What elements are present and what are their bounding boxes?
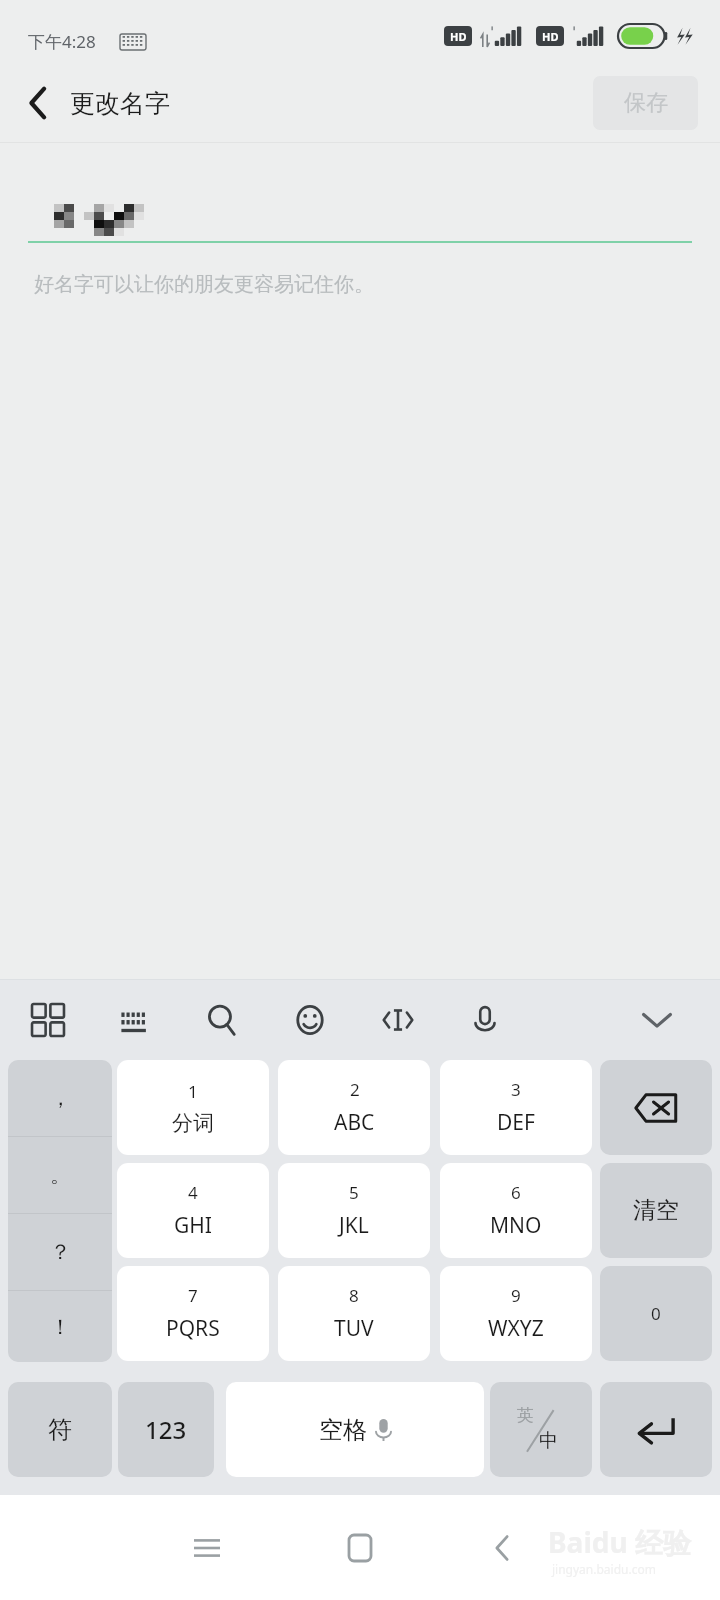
staticText: 7: [188, 1284, 198, 1307]
button[interactable]: 5: [278, 1163, 430, 1258]
button[interactable]: Voice input: [458, 993, 512, 1047]
staticText: 8: [349, 1284, 359, 1307]
button[interactable]: ！: [8, 1291, 112, 1362]
staticText: 5: [349, 1181, 359, 1204]
button[interactable]: 0: [600, 1266, 712, 1361]
staticText: 9: [511, 1284, 521, 1307]
staticText: DEF: [497, 1108, 535, 1137]
staticText: ？: [50, 1239, 71, 1265]
staticText: GHI: [174, 1211, 212, 1240]
staticText: ！: [50, 1314, 71, 1340]
staticText: JKL: [339, 1211, 369, 1240]
staticText: 保存: [624, 89, 668, 117]
button[interactable]: Move cursor: [371, 993, 425, 1047]
staticText: Baidu 经验: [548, 1523, 691, 1561]
staticText: 3: [511, 1078, 521, 1101]
button[interactable]: Hide keyboard: [630, 993, 684, 1047]
staticText: HD: [450, 29, 467, 44]
staticText: TUV: [334, 1314, 374, 1343]
staticText: 2: [350, 1078, 360, 1101]
staticText: HD: [542, 29, 559, 44]
button[interactable]: 4: [117, 1163, 269, 1258]
staticText: 分词: [172, 1110, 214, 1136]
staticText: 中: [539, 1429, 558, 1453]
staticText: WXYZ: [488, 1314, 544, 1343]
button[interactable]: ，: [8, 1060, 112, 1136]
button[interactable]: 符: [8, 1382, 112, 1477]
staticText: 清空: [633, 1196, 679, 1225]
staticText: ，: [50, 1085, 71, 1111]
staticText: jingyan.baidu.com: [552, 1561, 656, 1577]
button[interactable]: 2: [278, 1060, 430, 1155]
staticText: ABC: [334, 1108, 375, 1137]
staticText: 1: [188, 1080, 198, 1103]
button[interactable]: Backspace: [600, 1060, 712, 1155]
button[interactable]: Panels: [21, 993, 75, 1047]
button[interactable]: Back: [475, 1521, 529, 1575]
button[interactable]: 3: [440, 1060, 592, 1155]
staticText: 符: [48, 1415, 72, 1445]
button[interactable]: 清空: [600, 1163, 712, 1258]
staticText: 0: [651, 1302, 661, 1325]
button[interactable]: Enter: [600, 1382, 712, 1477]
button[interactable]: 空格: [226, 1382, 484, 1477]
staticText: 更改名字: [70, 88, 170, 119]
button[interactable]: Back: [10, 75, 66, 131]
staticText: 英: [517, 1405, 534, 1426]
button[interactable]: 保存: [593, 76, 698, 130]
staticText: 下午4:28: [28, 30, 96, 53]
button[interactable]: 9: [440, 1266, 592, 1361]
staticText: PQRS: [166, 1314, 220, 1343]
staticText: 好名字可以让你的朋友更容易记住你。: [34, 272, 374, 297]
staticText: 空格: [319, 1415, 367, 1445]
button[interactable]: 。: [8, 1137, 112, 1213]
button[interactable]: Recent apps: [180, 1521, 234, 1575]
button[interactable]: Search: [195, 993, 249, 1047]
button[interactable]: 123: [118, 1382, 214, 1477]
button[interactable]: 1: [117, 1060, 269, 1155]
button[interactable]: Emoji: [283, 993, 337, 1047]
staticText: 123: [145, 1413, 187, 1446]
button[interactable]: 7: [117, 1266, 269, 1361]
button[interactable]: Home: [333, 1521, 387, 1575]
button[interactable]: 英: [490, 1382, 592, 1477]
button[interactable]: Keyboard layout: [108, 993, 162, 1047]
staticText: 6: [511, 1181, 521, 1204]
staticText: 4: [188, 1181, 198, 1204]
staticText: 。: [50, 1162, 71, 1188]
button[interactable]: 8: [278, 1266, 430, 1361]
button[interactable]: 6: [440, 1163, 592, 1258]
staticText: MNO: [490, 1211, 542, 1240]
button[interactable]: ？: [8, 1214, 112, 1290]
